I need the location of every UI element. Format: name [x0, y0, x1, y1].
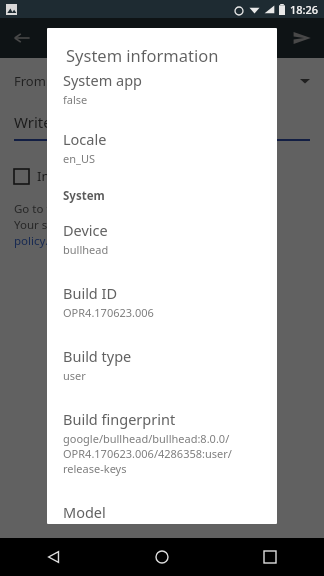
button[interactable]: Home — [108, 538, 216, 576]
staticText: Build ID — [63, 283, 118, 303]
staticText: 18:26 — [290, 2, 319, 17]
button[interactable]: Recent apps — [216, 538, 324, 576]
staticText: Build fingerprint — [63, 409, 176, 429]
staticText: OPR4.170623.006 — [63, 305, 154, 320]
button[interactable]: Send — [288, 24, 316, 52]
staticText: user — [63, 368, 86, 383]
button[interactable]: From: — [14, 72, 310, 90]
staticText: Go to the help center for legal informat… — [14, 201, 247, 217]
button[interactable]: Include system information — [14, 167, 310, 185]
button[interactable]: Back — [8, 24, 36, 52]
staticText: Model — [63, 502, 106, 522]
staticText: From: — [14, 72, 50, 90]
staticText: bullhead — [63, 242, 109, 257]
staticText: Device — [63, 220, 108, 240]
staticText: Locale — [63, 129, 107, 149]
staticText: google/bullhead/bullhead:8.0.0/ OPR4.170… — [63, 431, 232, 476]
staticText: Your submission is subject to the privac… — [14, 217, 233, 233]
staticText: System — [63, 188, 105, 204]
staticText: System app — [63, 70, 143, 90]
staticText: Write your feedback — [14, 112, 156, 132]
staticText: Include system information — [37, 167, 205, 185]
staticText: System information — [66, 44, 219, 66]
staticText: false — [63, 92, 88, 107]
staticText: en_US — [63, 151, 95, 166]
button[interactable]: Back — [0, 538, 108, 576]
staticText: Build type — [63, 346, 132, 366]
button[interactable]: policy. — [14, 233, 48, 249]
